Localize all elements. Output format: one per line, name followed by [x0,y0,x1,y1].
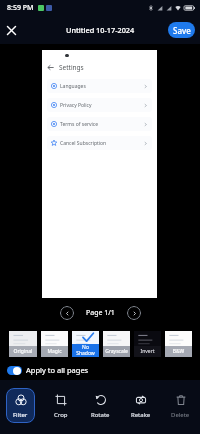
button[interactable]: Languages [47,79,152,93]
button[interactable]: No Shadow [72,331,99,357]
staticText: Settings [59,63,84,72]
button[interactable]: Magic [41,331,68,357]
button[interactable]: Next page [127,306,141,320]
staticText: Rotate [91,411,110,419]
button[interactable]: Grayscale [103,331,130,357]
staticText: Delete [171,411,190,419]
staticText: Page 1/1 [86,308,115,318]
button[interactable]: Privacy Policy [47,98,152,112]
staticText: Retake [131,411,151,419]
staticText: B&W [165,348,192,355]
button[interactable]: Delete [166,388,195,423]
button[interactable]: Save [168,22,195,38]
staticText: Grayscale [103,348,130,355]
staticText: Magic [41,348,68,355]
button[interactable]: Close [3,22,20,39]
staticText: Original [9,348,37,355]
button[interactable]: Original [9,331,37,357]
staticText: Save [173,25,191,36]
button[interactable]: Rotate [86,388,115,423]
staticText: Invert [134,348,161,355]
staticText: Untitled 10-17-2024 [66,25,135,35]
staticText: No Shadow [72,344,99,357]
staticText: Languages [60,83,86,90]
staticText: Crop [54,411,68,419]
button[interactable]: Retake [126,388,155,423]
staticText: Apply to all pages [26,365,89,375]
button[interactable]: Cancel Subscription [47,136,152,150]
button[interactable]: Crop [46,388,75,423]
staticText: Privacy Policy [60,102,92,109]
button[interactable]: Apply to all pages [7,362,200,378]
staticText: 8:59 PM [7,3,34,13]
button[interactable]: Filter [6,388,35,423]
button[interactable]: Terms of service [47,117,152,131]
button[interactable]: Invert [134,331,161,357]
staticText: Cancel Subscription [60,140,107,147]
staticText: Terms of service [60,121,99,128]
button[interactable]: Previous page [60,306,74,320]
staticText: Filter [13,411,28,419]
button[interactable]: B&W [165,331,192,357]
